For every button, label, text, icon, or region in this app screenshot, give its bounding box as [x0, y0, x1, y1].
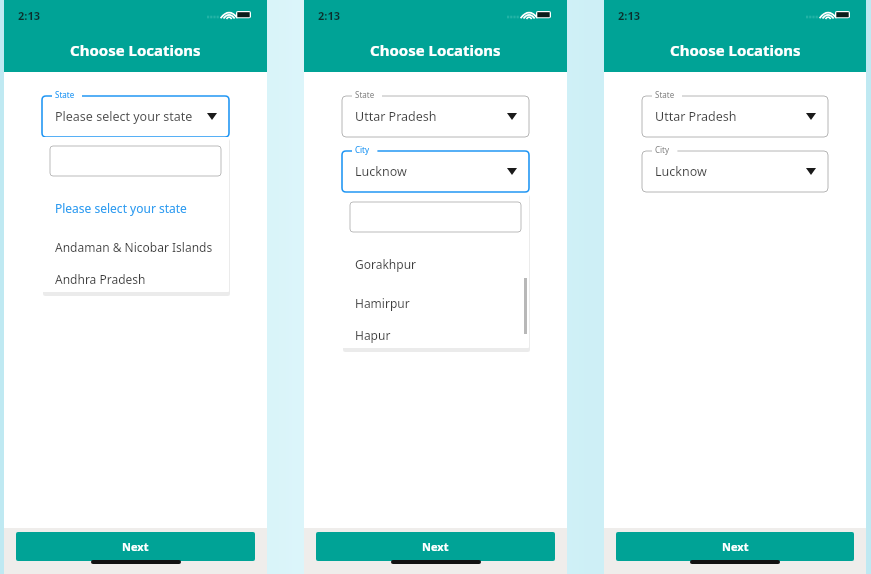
button[interactable]: State — [42, 90, 229, 137]
staticText: State — [355, 89, 375, 100]
button[interactable]: Next — [316, 532, 555, 561]
button[interactable] — [50, 146, 221, 176]
button[interactable]: City — [642, 145, 828, 192]
button[interactable]: Andhra Pradesh — [42, 266, 229, 292]
button[interactable]: State — [642, 90, 828, 137]
staticText: Choose Locations — [370, 40, 501, 60]
button[interactable]: Hapur — [342, 322, 529, 348]
staticText: Lucknow — [655, 163, 707, 180]
staticText: Please select your state — [55, 200, 187, 216]
button[interactable] — [350, 202, 521, 232]
button[interactable]: Gorakhpur — [342, 244, 529, 283]
staticText: Hamirpur — [355, 295, 410, 311]
staticText: Next — [722, 539, 749, 554]
button[interactable]: Next — [16, 532, 255, 561]
staticText: 2:13 — [318, 8, 340, 23]
staticText: Uttar Pradesh — [355, 108, 437, 125]
button[interactable]: Andaman & Nicobar Islands — [42, 227, 229, 266]
staticText: Next — [122, 539, 149, 554]
button[interactable]: Hamirpur — [342, 283, 529, 322]
staticText: 2:13 — [18, 8, 40, 23]
staticText: Lucknow — [355, 163, 407, 180]
button[interactable]: Next — [616, 532, 854, 561]
staticText: Gorakhpur — [355, 256, 417, 272]
button[interactable]: Please select your state — [42, 188, 229, 227]
staticText: Andhra Pradesh — [55, 271, 146, 287]
staticText: Choose Locations — [670, 40, 801, 60]
staticText: State — [55, 89, 75, 100]
staticText: City — [355, 144, 370, 155]
staticText: Choose Locations — [70, 40, 201, 60]
button[interactable]: State — [342, 90, 529, 137]
staticText: 2:13 — [618, 8, 640, 23]
staticText: Andaman & Nicobar Islands — [55, 239, 213, 255]
staticText: City — [655, 144, 670, 155]
staticText: State — [655, 89, 675, 100]
staticText: Hapur — [355, 327, 391, 343]
staticText: Next — [422, 539, 449, 554]
button[interactable]: City — [342, 145, 529, 192]
staticText: Please select your state — [55, 108, 193, 125]
staticText: Uttar Pradesh — [655, 108, 737, 125]
